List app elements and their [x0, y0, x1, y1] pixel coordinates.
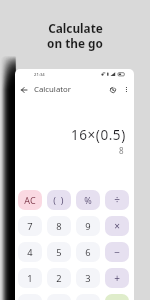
staticText: ( ) [53, 194, 65, 206]
staticText: 21:34 [34, 72, 45, 78]
staticText: Calculate [48, 20, 103, 36]
staticText: 8 [56, 220, 62, 233]
button[interactable]: 5 [47, 242, 71, 262]
button[interactable]: AC [18, 190, 42, 210]
button[interactable]: ⌫ [76, 294, 100, 300]
staticText: + [114, 271, 120, 285]
staticText: 3 [85, 272, 91, 285]
staticText: AC [24, 194, 36, 206]
staticText: 2 [56, 272, 62, 285]
staticText: 7 [27, 220, 33, 233]
staticText: 8 [119, 145, 124, 156]
staticText: Calculator [34, 84, 72, 95]
button[interactable]: 3 [76, 268, 100, 288]
button[interactable]: 4 [18, 242, 42, 262]
staticText: % [84, 194, 92, 206]
button[interactable]: 6 [76, 242, 100, 262]
staticText: 6 [85, 246, 91, 259]
staticText: ÷ [114, 193, 120, 207]
button[interactable]: 2 [47, 268, 71, 288]
button[interactable]: More options [120, 83, 132, 95]
button[interactable]: 0 [18, 294, 42, 300]
button[interactable]: ÷ [105, 190, 129, 210]
button[interactable]: . [47, 294, 71, 300]
staticText: 5 [56, 246, 62, 259]
staticText: 1 [27, 272, 33, 285]
button[interactable]: − [105, 242, 129, 262]
button[interactable]: 7 [18, 216, 42, 236]
button[interactable]: × [105, 216, 129, 236]
staticText: 9 [85, 220, 91, 233]
button[interactable]: 9 [76, 216, 100, 236]
button[interactable]: 1 [18, 268, 42, 288]
button[interactable]: 8 [47, 216, 71, 236]
staticText: × [114, 219, 120, 233]
staticText: on the go [47, 35, 103, 51]
staticText: 4 [27, 246, 33, 259]
button[interactable]: History [106, 83, 119, 96]
button[interactable]: + [105, 268, 129, 288]
button[interactable]: % [76, 190, 100, 210]
button[interactable]: ( ) [47, 190, 71, 210]
button[interactable]: = [105, 294, 129, 300]
button[interactable]: Back [18, 84, 30, 96]
staticText: 16×(0.5) [71, 126, 126, 144]
staticText: − [114, 245, 120, 259]
